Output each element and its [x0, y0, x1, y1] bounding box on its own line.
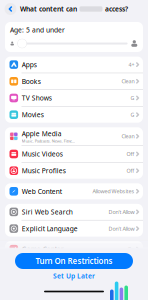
staticText: Turn On Restrictions — [35, 256, 112, 266]
staticText: Don't Allow — [108, 208, 134, 215]
staticText: Apps — [22, 60, 37, 69]
button[interactable]: Movies — [5, 107, 143, 123]
staticText: Game Center — [22, 245, 64, 254]
staticText: access? — [105, 5, 128, 13]
button[interactable]: Siri Web Search — [5, 204, 143, 220]
staticText: Off — [126, 150, 134, 158]
staticText: TV Shows — [22, 94, 52, 102]
staticText: Books — [22, 77, 41, 86]
staticText: Explicit Language — [22, 224, 78, 233]
staticText: Siri Web Search — [22, 207, 73, 216]
staticText: Age: 5 and under — [10, 26, 65, 34]
staticText: 4+ — [128, 61, 134, 68]
staticText: G — [130, 94, 134, 102]
button[interactable]: Apps — [5, 57, 143, 73]
staticText: Clean — [121, 133, 134, 140]
button[interactable]: Apple Media — [5, 127, 143, 145]
staticText: Movies — [22, 110, 44, 119]
button[interactable]: Explicit Language — [5, 221, 143, 237]
staticText: Off — [126, 167, 134, 174]
button[interactable]: Web Content — [5, 183, 143, 199]
button[interactable]: Music Profiles — [5, 163, 143, 179]
staticText: G — [130, 111, 134, 118]
button[interactable]: Set Up Later — [15, 269, 133, 283]
button[interactable]: Music Videos — [5, 146, 143, 162]
staticText: Apple Media — [22, 129, 62, 138]
staticText: Music Videos — [22, 150, 63, 158]
staticText: Allowed Websites — [92, 188, 134, 195]
staticText: Web Content — [22, 187, 62, 196]
staticText: Set Up Later — [53, 272, 95, 280]
button[interactable]: Turn On Restrictions — [15, 253, 133, 269]
staticText: Don't Allow — [108, 225, 134, 232]
button[interactable]: Game Center — [5, 241, 143, 257]
staticText: What content can — [20, 5, 77, 13]
staticText: Music Profiles — [22, 166, 66, 175]
staticText: Clean — [121, 78, 134, 85]
button[interactable]: TV Shows — [5, 90, 143, 106]
button[interactable]: Back — [3, 1, 18, 16]
staticText: Music, Podcasts, News, Fitne… — [22, 138, 75, 143]
button[interactable]: Books — [5, 73, 143, 89]
